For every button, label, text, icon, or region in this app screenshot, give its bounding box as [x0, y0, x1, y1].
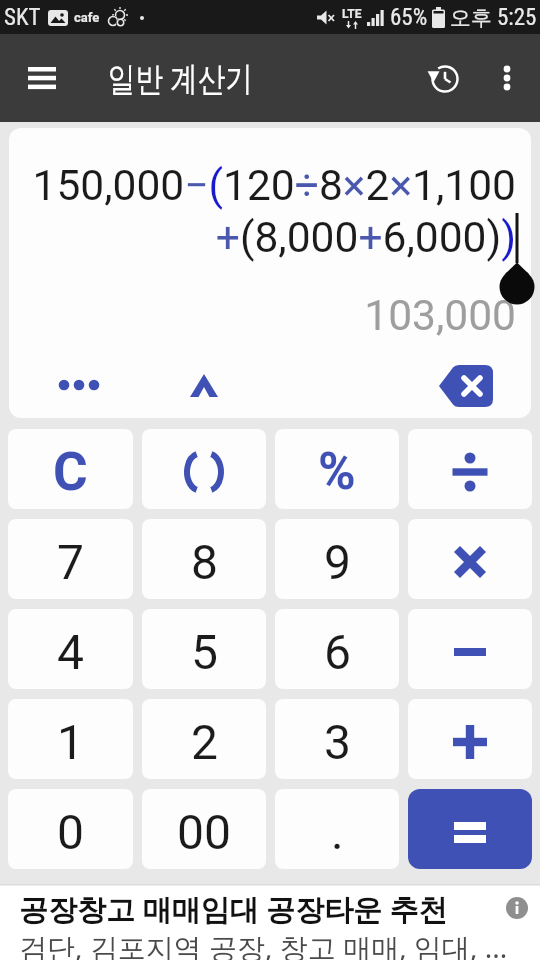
button[interactable]: % [275, 429, 399, 509]
staticText: 2 [191, 714, 218, 770]
button[interactable] [39, 356, 119, 414]
button[interactable] [408, 519, 532, 599]
button[interactable] [408, 789, 532, 869]
staticText: 0 [57, 804, 84, 860]
staticText: SKT [4, 4, 41, 31]
button[interactable] [482, 53, 532, 103]
button[interactable]: 3 [275, 699, 399, 779]
button[interactable] [408, 609, 532, 689]
staticText: 5:25 [497, 4, 537, 31]
button[interactable]: 6 [275, 609, 399, 689]
staticText: cafe [74, 10, 100, 25]
button[interactable] [408, 429, 532, 509]
button[interactable]: 00 [142, 789, 266, 869]
button[interactable]: 9 [275, 519, 399, 599]
button[interactable]: 0 [8, 789, 133, 869]
staticText: . [331, 804, 344, 860]
button[interactable] [142, 429, 266, 509]
staticText: C [53, 441, 88, 503]
button[interactable]: 2 [142, 699, 266, 779]
staticText: 150,000−(120÷8×2×1,100 +(8,000+6,000)) [9, 161, 516, 263]
button[interactable]: 1 [8, 699, 133, 779]
staticText: 6 [324, 624, 351, 680]
button[interactable] [169, 356, 239, 414]
staticText: 00 [177, 804, 231, 860]
button[interactable] [408, 699, 532, 779]
staticText: 5 [191, 624, 218, 680]
staticText: LTE [342, 7, 362, 21]
button[interactable]: . [275, 789, 399, 869]
staticText: 9 [324, 534, 351, 590]
staticText: 65% [390, 4, 428, 31]
staticText: 일반 계산기 [108, 55, 253, 101]
button[interactable]: 공장창고 매매임대 공장타운 추천 [0, 884, 540, 960]
staticText: 103,000 [9, 291, 516, 341]
button[interactable]: C [8, 429, 133, 509]
staticText: % [318, 442, 356, 502]
staticText: 3 [324, 714, 351, 770]
staticText: 검단, 김포지역 공장, 창고 매매, 임대, ... [19, 928, 508, 960]
button[interactable]: 4 [8, 609, 133, 689]
button[interactable]: 7 [8, 519, 133, 599]
staticText: 1 [57, 714, 84, 770]
staticText: 4 [57, 624, 84, 680]
button[interactable]: 8 [142, 519, 266, 599]
button[interactable] [439, 365, 493, 407]
button[interactable] [14, 50, 70, 106]
button[interactable] [416, 51, 471, 106]
button[interactable]: 5 [142, 609, 266, 689]
staticText: 오후 [450, 5, 492, 31]
staticText: 공장창고 매매임대 공장타운 추천 [19, 889, 448, 929]
staticText: 7 [57, 534, 84, 590]
staticText: 8 [191, 534, 218, 590]
